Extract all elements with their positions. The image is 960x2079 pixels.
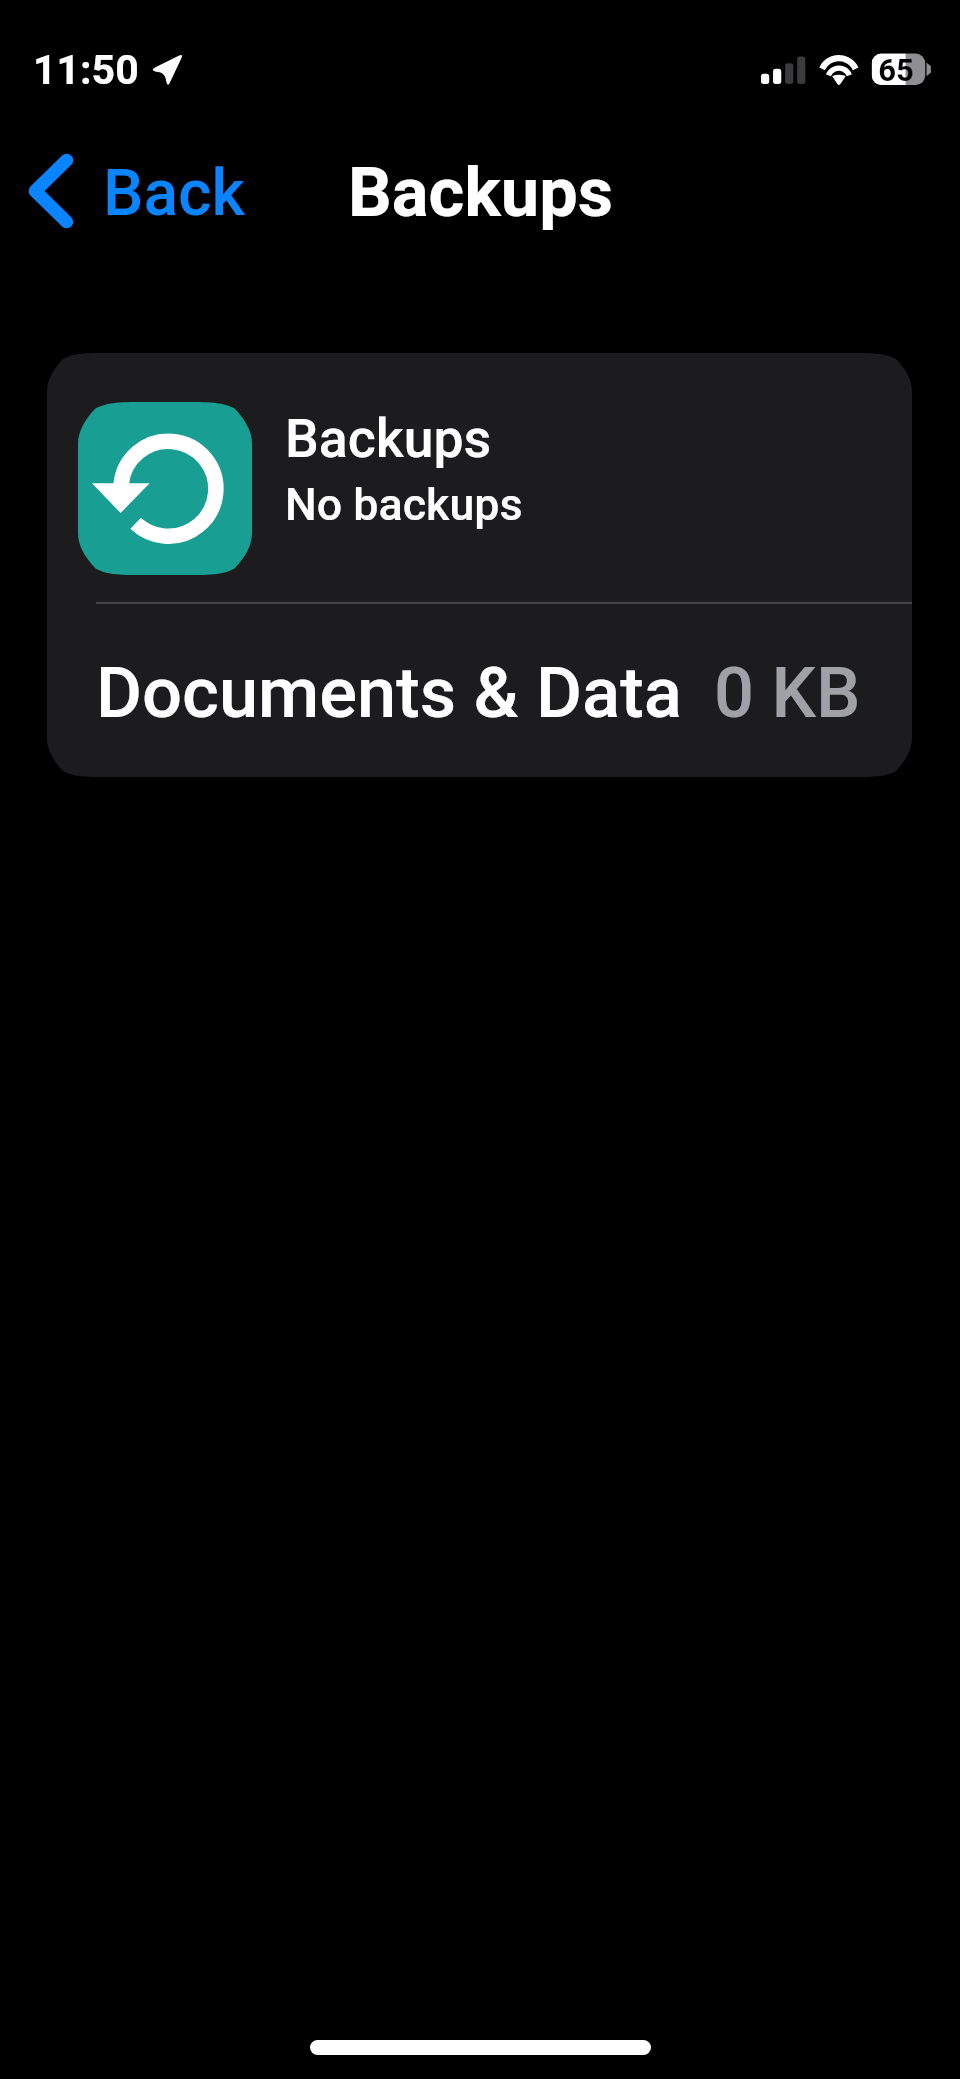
staticText: No backups <box>285 479 523 531</box>
button[interactable]: Back <box>10 133 266 249</box>
staticText: 0 KB <box>714 652 861 735</box>
staticText: Backups <box>285 407 492 470</box>
button[interactable]: Backups <box>47 353 912 602</box>
staticText: Backups <box>348 152 613 232</box>
staticText: 65 <box>864 52 928 88</box>
staticText: Back <box>103 156 245 231</box>
staticText: 11:50 <box>33 46 139 94</box>
staticText: Documents & Data <box>96 652 682 735</box>
button[interactable]: Documents & Data <box>47 604 912 777</box>
